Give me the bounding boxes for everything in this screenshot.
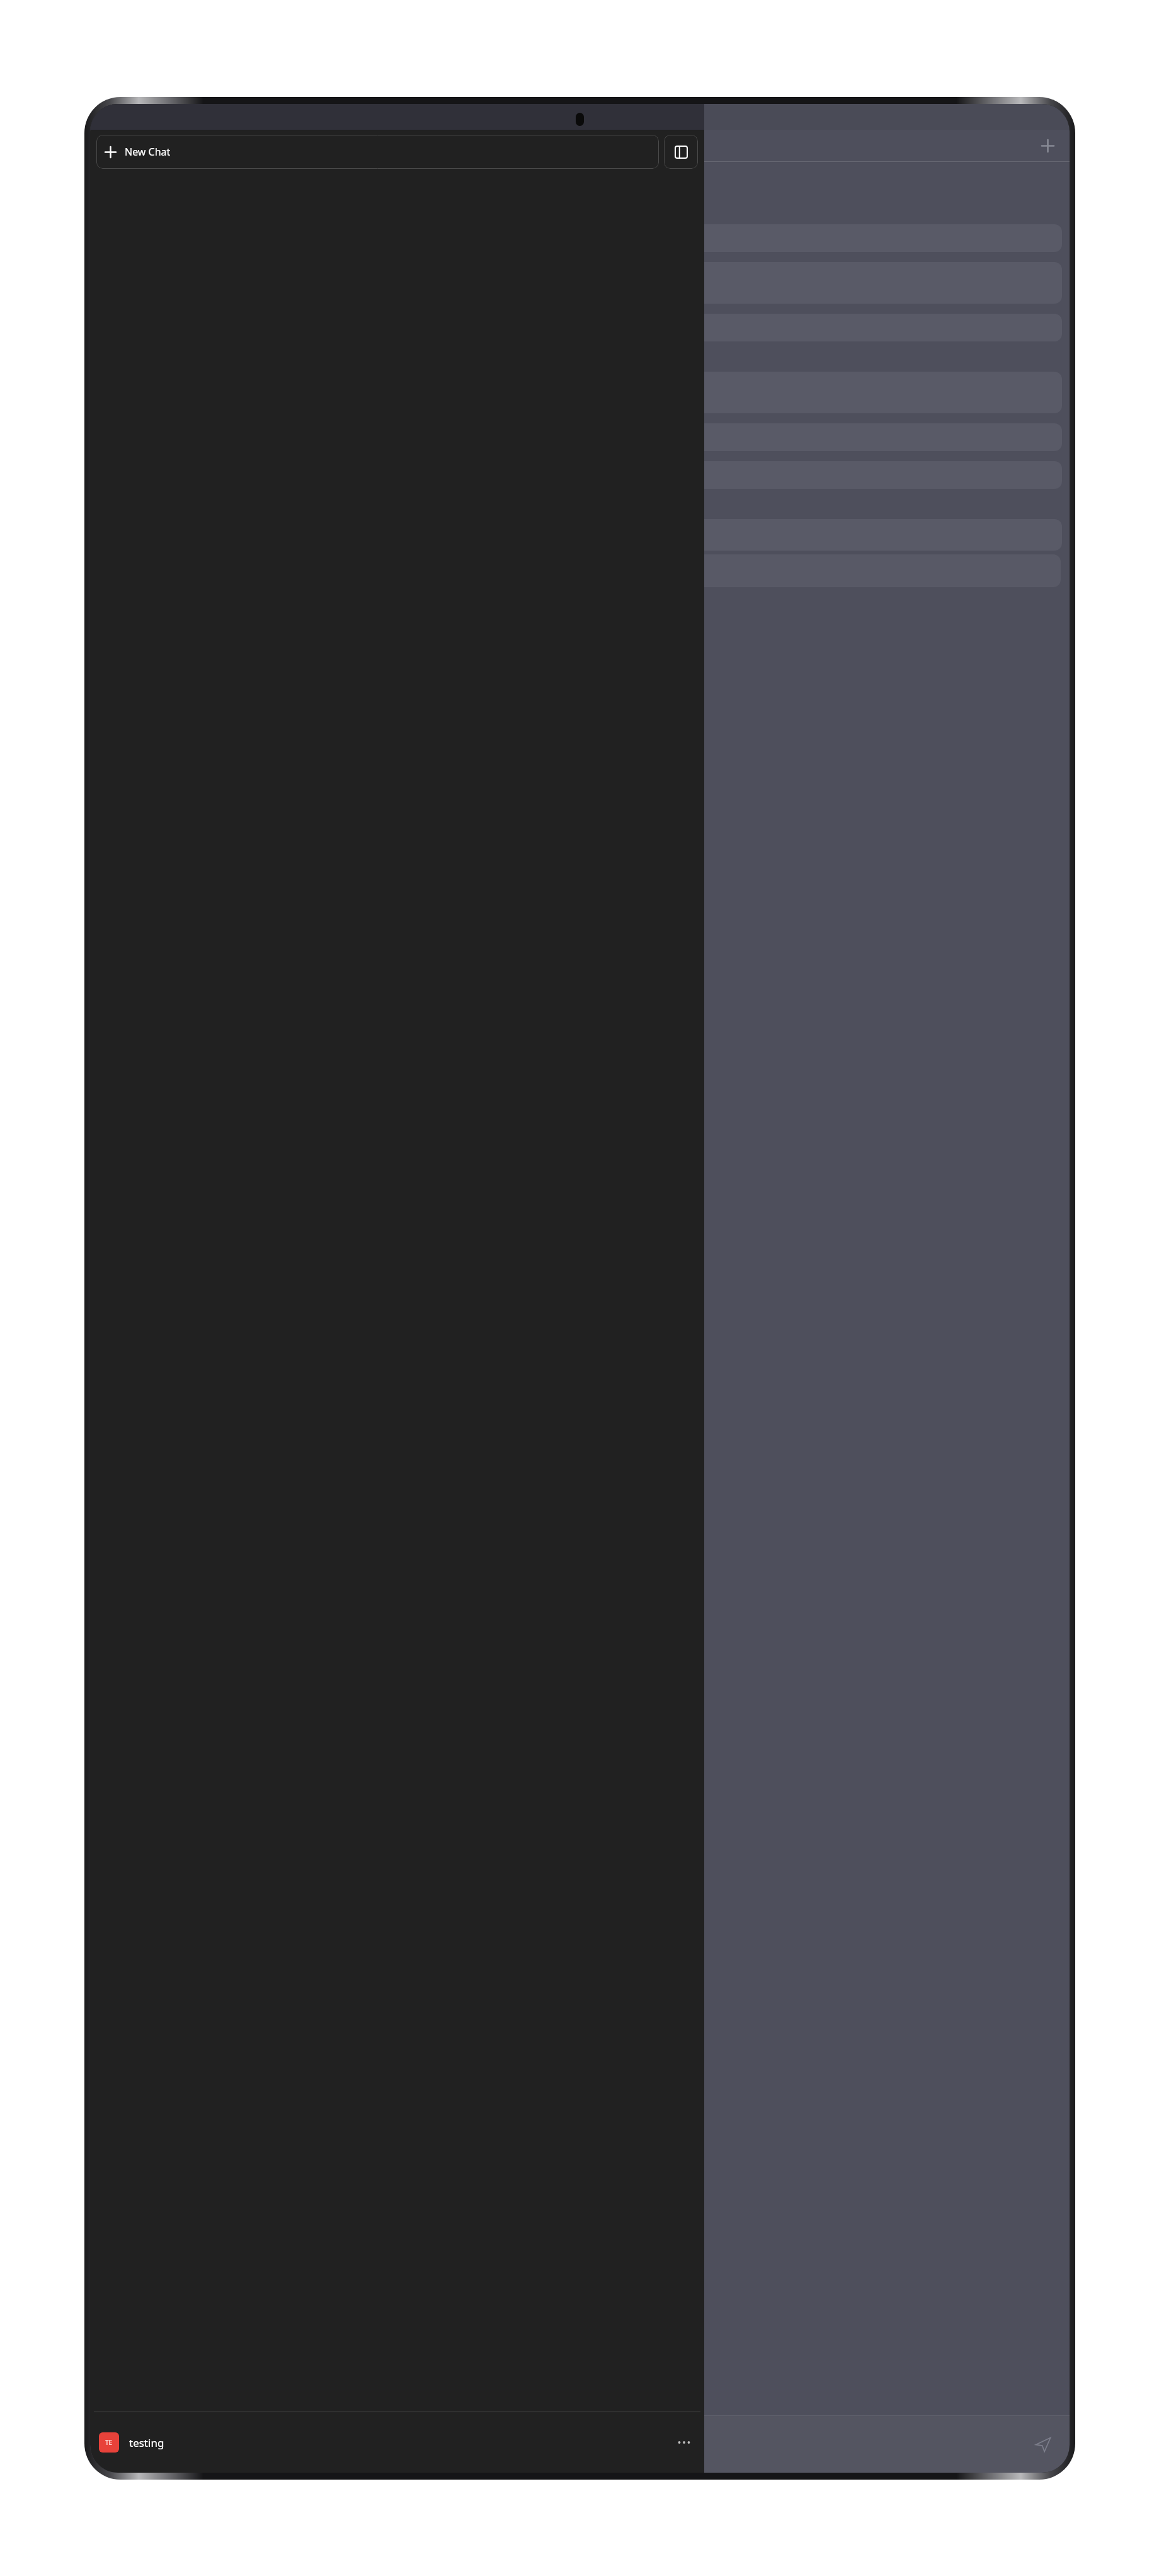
button[interactable]: Explain this in simple terms" → [98,224,1062,252]
button[interactable]: New chat [1037,135,1058,156]
staticText: testing [129,2436,164,2450]
staticText: New Chat [125,145,171,159]
button[interactable]: Trained to decline inappropriate request… [98,461,1062,489]
button[interactable]: Allows user to provide corrections [98,423,1062,451]
button[interactable]: New Chat [96,135,659,169]
button[interactable]: What is Javascript?" → [98,314,1062,341]
button[interactable]: Write a 5 year old's birthday message [98,262,1062,304]
staticText: TE [105,2438,113,2447]
button[interactable]: Send [1029,2430,1057,2458]
button[interactable]: TE [90,2412,704,2473]
button[interactable]: More options [673,2431,695,2454]
button[interactable]: May occasionally generate incorrect info… [98,519,1062,551]
button[interactable]: Close sidebar [664,135,698,169]
button[interactable]: Remembers what user said earlier in the … [98,372,1062,413]
